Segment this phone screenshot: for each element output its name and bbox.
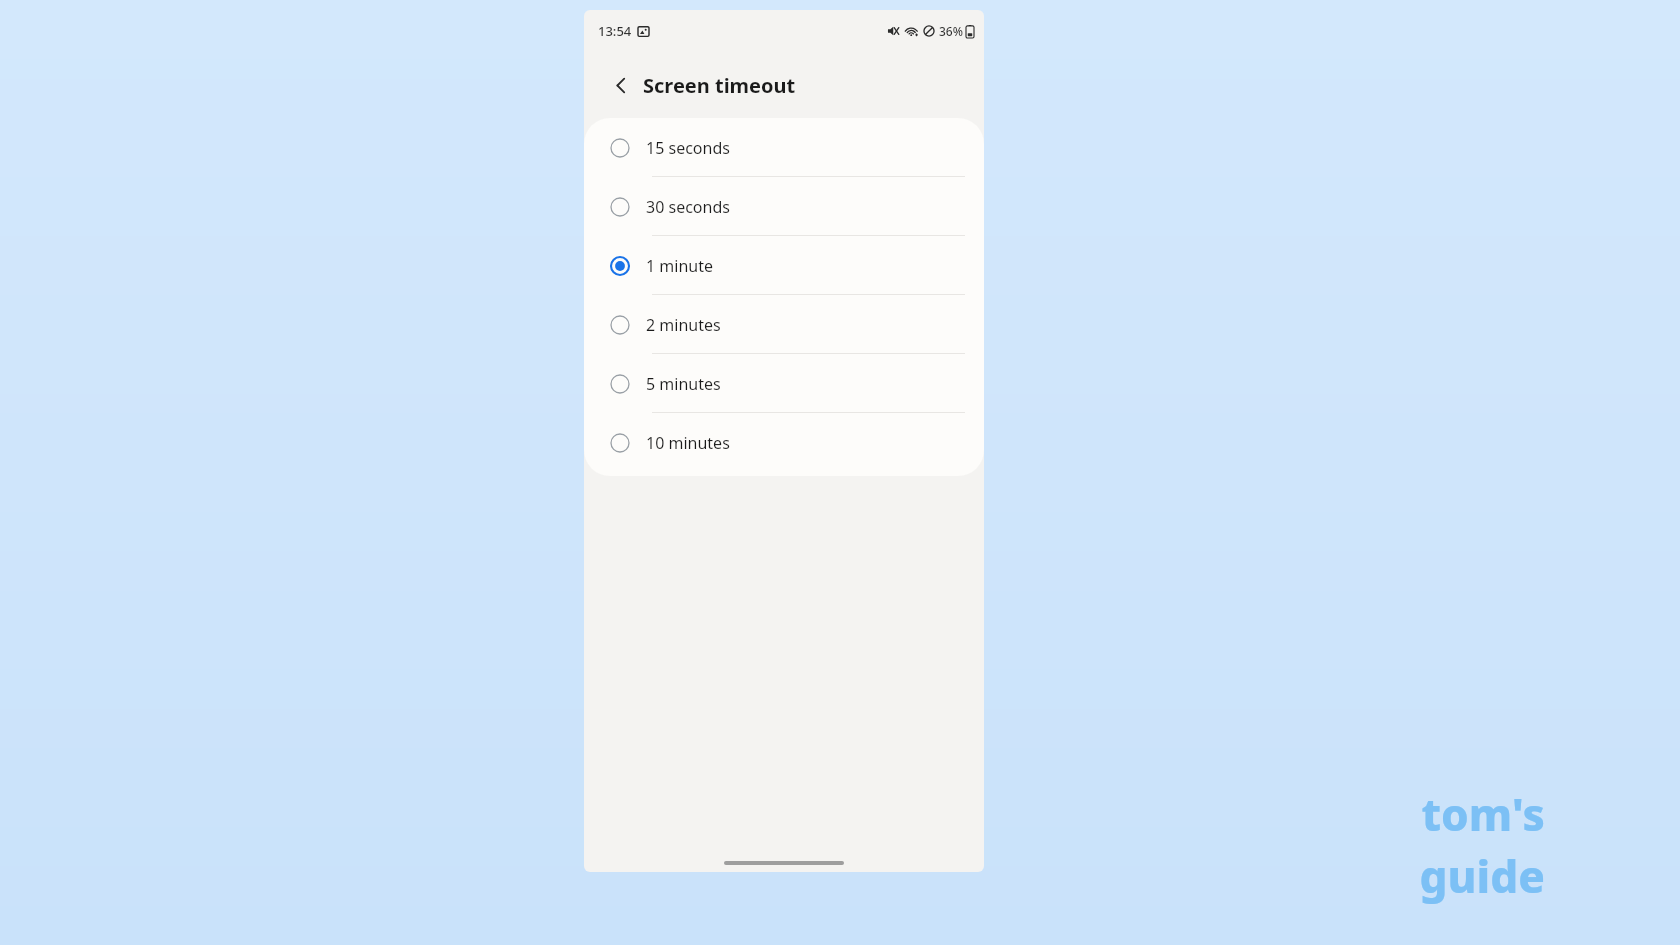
staticText: 13:54 (598, 22, 632, 40)
button[interactable]: 15 seconds (584, 118, 984, 177)
staticText: Screen timeout (643, 72, 796, 99)
staticText: 36% (939, 23, 963, 39)
staticText: 2 minutes (646, 314, 721, 336)
button[interactable]: 2 minutes (584, 295, 984, 354)
staticText: 5 minutes (646, 373, 721, 395)
staticText: 1 minute (646, 255, 713, 277)
staticText: guide (1419, 846, 1545, 906)
button[interactable]: 10 minutes (584, 413, 984, 472)
button[interactable]: 30 seconds (584, 177, 984, 236)
staticText: tom's (1421, 784, 1545, 844)
staticText: 10 minutes (646, 432, 730, 454)
staticText: 30 seconds (646, 196, 730, 218)
button[interactable]: 5 minutes (584, 354, 984, 413)
staticText: 15 seconds (646, 137, 730, 159)
button[interactable]: 1 minute (584, 236, 984, 295)
button[interactable]: Back (608, 72, 634, 98)
